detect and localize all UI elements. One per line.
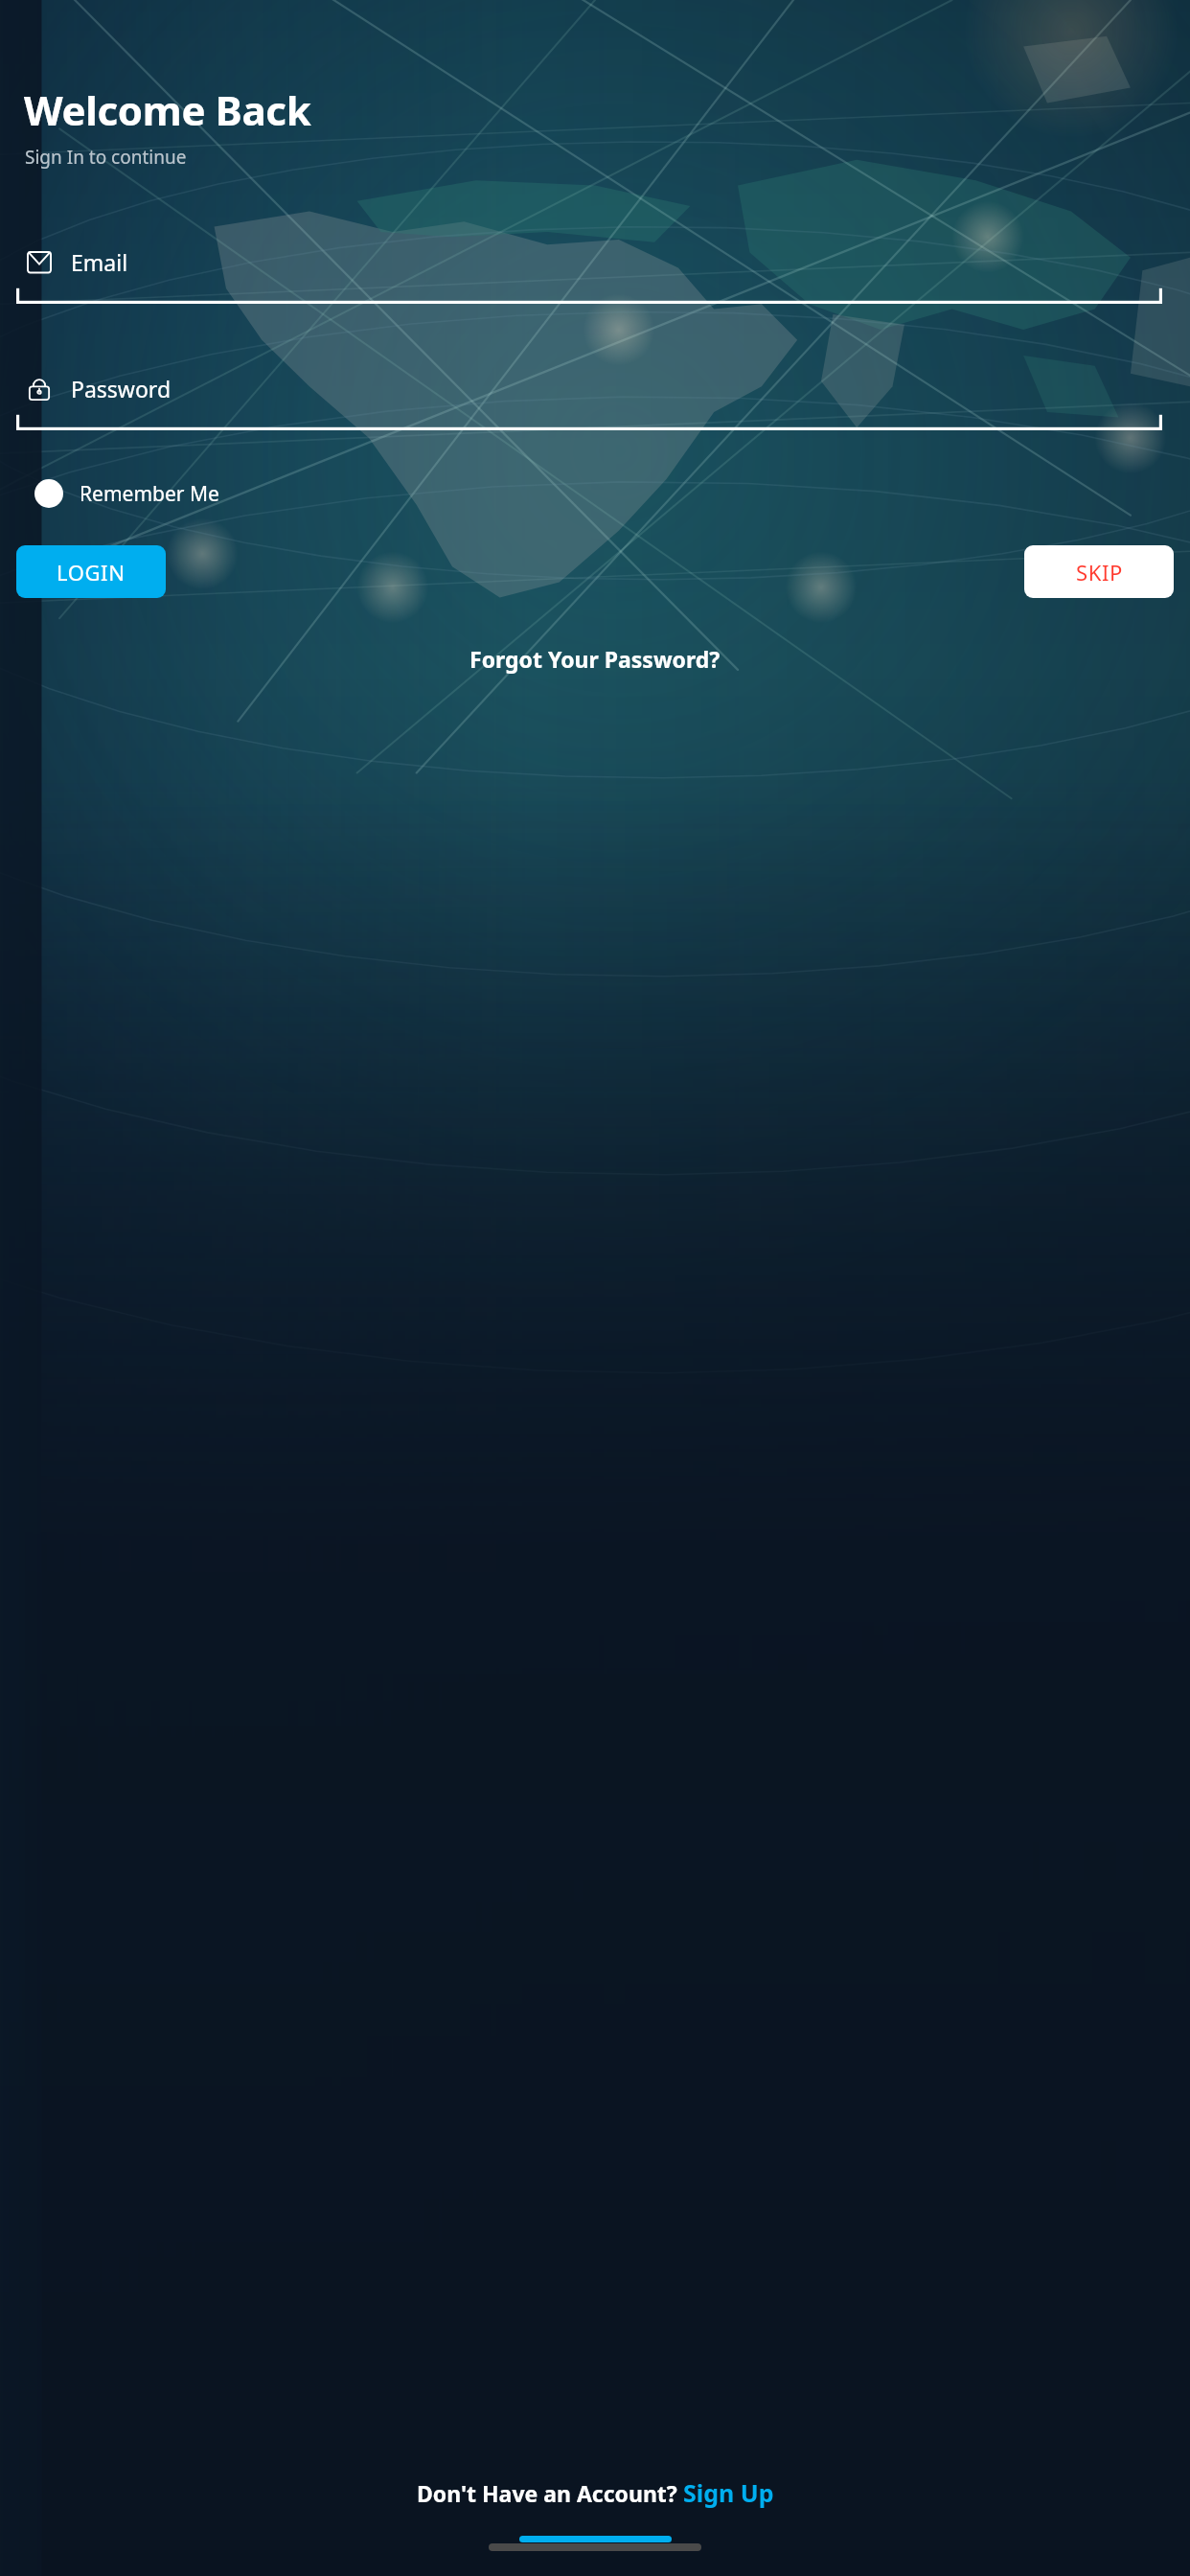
button[interactable]: LOGIN: [16, 545, 166, 598]
button[interactable]: Email: [16, 247, 1162, 304]
button[interactable]: SKIP: [1024, 545, 1174, 598]
staticText: Password: [71, 374, 172, 403]
other: Email: [27, 250, 52, 275]
staticText: Remember Me: [80, 480, 219, 508]
staticText: Email: [71, 247, 128, 277]
button[interactable]: Remember Me: [34, 479, 219, 508]
staticText: SKIP: [1076, 558, 1123, 586]
staticText: Sign In to continue: [25, 145, 187, 170]
staticText: Welcome Back: [24, 82, 311, 137]
other: Password: [27, 377, 52, 402]
staticText: LOGIN: [57, 558, 126, 586]
staticText: Don't Have an Account?: [417, 2478, 683, 2508]
button[interactable]: Forgot Your Password?: [458, 638, 732, 679]
button[interactable]: Password: [16, 374, 1162, 430]
button[interactable]: Sign Up: [683, 2476, 774, 2509]
